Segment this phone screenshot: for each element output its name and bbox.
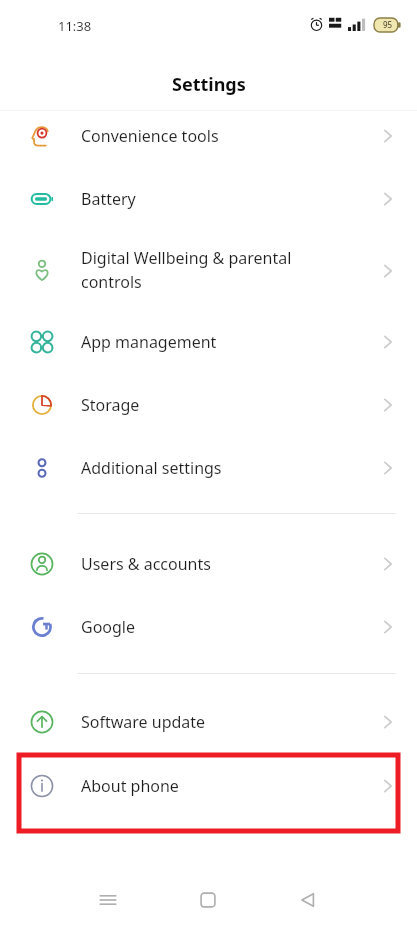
button[interactable]: Recent apps: [93, 885, 123, 915]
staticText: App management: [81, 331, 217, 353]
staticText: 95: [383, 19, 393, 30]
button[interactable]: App management: [0, 310, 417, 373]
button[interactable]: Google: [0, 595, 417, 658]
button[interactable]: Digital Wellbeing & parental controls: [0, 239, 417, 302]
staticText: Convenience tools: [81, 125, 219, 147]
staticText: Storage: [81, 394, 140, 416]
staticText: Google: [81, 616, 136, 638]
staticText: Software update: [81, 711, 206, 733]
staticText: 11:38: [58, 17, 92, 35]
staticText: Additional settings: [81, 457, 222, 479]
button[interactable]: Additional settings: [0, 436, 417, 499]
staticText: Users & accounts: [81, 553, 211, 575]
button[interactable]: Storage: [0, 373, 417, 436]
staticText: Battery: [81, 188, 136, 210]
button[interactable]: Home: [193, 885, 223, 915]
staticText: About phone: [81, 775, 179, 797]
button[interactable]: Users & accounts: [0, 532, 417, 595]
staticText: Digital Wellbeing & parental controls: [81, 247, 292, 293]
button[interactable]: Battery: [0, 167, 417, 230]
button[interactable]: Back: [293, 885, 323, 915]
button[interactable]: Convenience tools: [0, 104, 417, 167]
button[interactable]: Settings: [0, 70, 417, 98]
button[interactable]: Software update: [0, 690, 417, 753]
button[interactable]: About phone: [0, 754, 417, 817]
staticText: Settings: [172, 72, 246, 97]
